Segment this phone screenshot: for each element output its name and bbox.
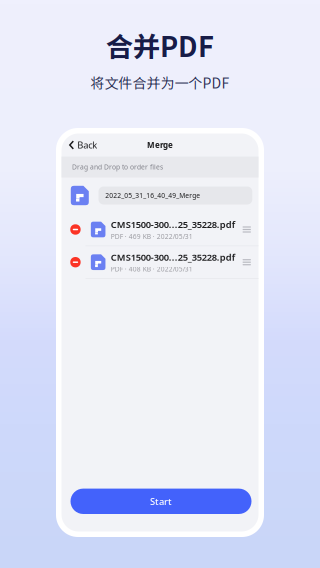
- button[interactable]: Back: [61, 133, 105, 156]
- button[interactable]: CMS1500-300...25_35228.pdf: [61, 246, 259, 278]
- staticText: Start: [150, 495, 172, 507]
- staticText: CMS1500-300...25_35228.pdf: [111, 218, 235, 231]
- staticText: Merge: [147, 140, 173, 150]
- button[interactable]: Start: [61, 489, 258, 514]
- staticText: Back: [77, 139, 97, 151]
- staticText: 将文件合并为一个PDF: [90, 72, 229, 93]
- staticText: 2022_05_31_16_40_49_Merge: [105, 191, 200, 200]
- staticText: PDF · 469 KB · 2022/05/31: [111, 232, 193, 241]
- staticText: PDF · 408 KB · 2022/05/31: [111, 265, 193, 273]
- staticText: Drag and Drop to order files: [72, 163, 163, 171]
- staticText: 合并PDF: [106, 25, 214, 65]
- staticText: CMS1500-300...25_35228.pdf: [111, 251, 235, 263]
- button[interactable]: CMS1500-300...25_35228.pdf: [61, 213, 259, 245]
